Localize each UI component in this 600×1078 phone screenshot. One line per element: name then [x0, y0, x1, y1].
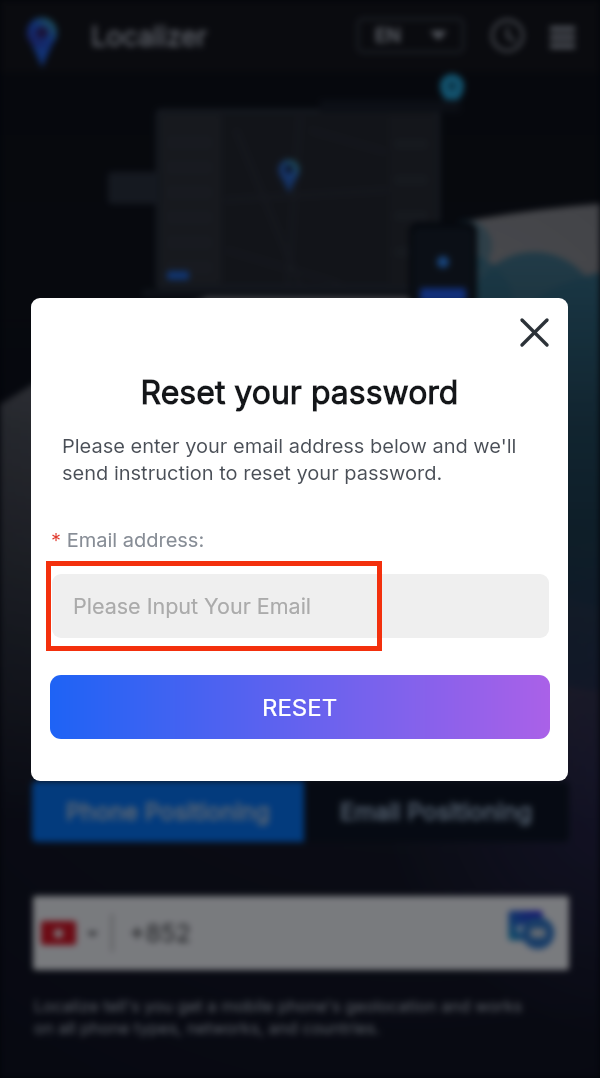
button[interactable]: EN	[357, 18, 464, 53]
staticText: Localize tell's you get a mobile phone's…	[34, 996, 534, 1038]
staticText: Please Input Your Email	[73, 593, 312, 619]
button[interactable]: Close	[512, 310, 556, 354]
staticText: Reset your password	[31, 373, 568, 412]
staticText: * Email address:	[51, 528, 205, 552]
staticText: Email Positioning	[340, 797, 533, 826]
staticText: RESET	[262, 693, 338, 722]
staticText: EN	[375, 24, 401, 47]
button[interactable]: Help	[486, 14, 529, 57]
button[interactable]: Email Positioning	[304, 781, 569, 842]
staticText: Localizer	[91, 20, 207, 53]
button[interactable]: Please Input Your Email	[52, 574, 549, 638]
staticText: +852	[129, 918, 192, 948]
button[interactable]: Menu	[540, 15, 584, 59]
staticText: Please enter your email address below an…	[62, 434, 534, 485]
button[interactable]: Phone Positioning	[32, 781, 304, 842]
button[interactable]: RESET	[50, 675, 550, 739]
staticText: Phone Positioning	[66, 797, 270, 826]
button[interactable]: +852	[33, 896, 569, 970]
